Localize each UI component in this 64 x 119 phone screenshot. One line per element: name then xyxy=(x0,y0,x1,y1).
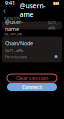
button[interactable]: Clear session xyxy=(7,74,57,82)
staticText: Permissions xyxy=(5,54,27,59)
staticText: ▮▮▮ xyxy=(53,1,59,5)
staticText: ‹ xyxy=(3,4,6,16)
button[interactable]: Back xyxy=(3,4,6,16)
staticText: 0x71…af0b xyxy=(48,20,59,31)
button[interactable]: Connect xyxy=(7,83,57,91)
staticText: Clear session xyxy=(16,74,48,82)
staticText: 9:41 xyxy=(5,0,15,7)
staticText: NETWORK xyxy=(4,31,22,37)
staticText: Connect xyxy=(22,83,42,91)
staticText: @username xyxy=(19,1,45,19)
staticText: IDENTITY xyxy=(4,16,20,21)
staticText: 0x71…af0b xyxy=(5,48,23,53)
staticText: Chain/Node xyxy=(5,40,33,47)
staticText: @username xyxy=(5,18,23,32)
